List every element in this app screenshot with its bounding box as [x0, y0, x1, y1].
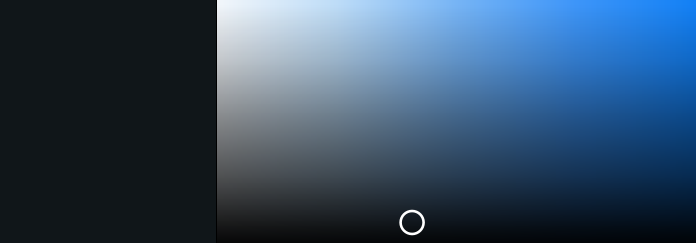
button[interactable]: Take Photo — [390, 200, 434, 243]
